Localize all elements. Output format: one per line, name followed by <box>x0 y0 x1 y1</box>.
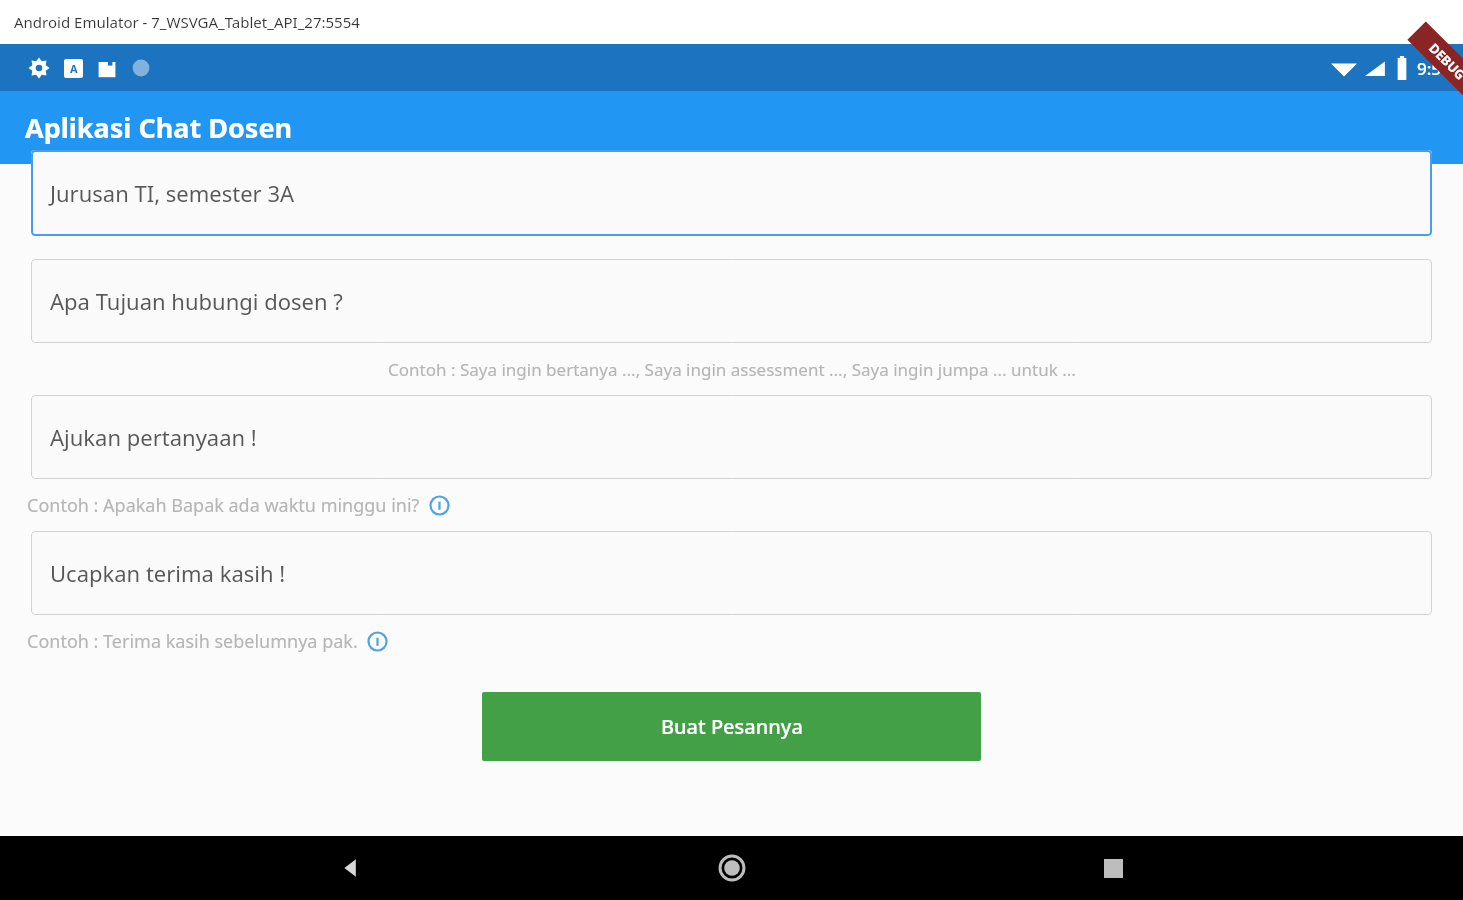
staticText: Buat Pesannya <box>661 713 803 740</box>
staticText: Ucapkan terima kasih ! <box>50 558 286 588</box>
staticText: Contoh : Apakah Bapak ada waktu minggu i… <box>27 493 420 518</box>
button[interactable]: Apa Tujuan hubungi dosen ? <box>31 259 1432 343</box>
button[interactable]: Jurusan TI, semester 3A <box>31 150 1432 236</box>
staticText: Ajukan pertanyaan ! <box>50 422 257 452</box>
button[interactable]: Recent apps <box>1082 837 1144 899</box>
staticText: Android Emulator - 7_WSVGA_Tablet_API_27… <box>14 12 360 32</box>
staticText: Jurusan TI, semester 3A <box>50 178 295 208</box>
button[interactable]: Information <box>367 631 388 652</box>
button[interactable]: Back <box>320 837 382 899</box>
staticText: Contoh : Saya ingin bertanya ..., Saya i… <box>388 358 1076 381</box>
staticText: DEBUG <box>1425 39 1463 84</box>
staticText: Contoh : Terima kasih sebelumnya pak. <box>27 629 358 654</box>
button[interactable]: Ajukan pertanyaan ! <box>31 395 1432 479</box>
staticText: Apa Tujuan hubungi dosen ? <box>50 286 343 316</box>
staticText: A <box>70 61 78 76</box>
staticText: 9:50 <box>1417 57 1451 80</box>
button[interactable]: Home <box>701 837 763 899</box>
staticText: Aplikasi Chat Dosen <box>25 109 293 146</box>
button[interactable]: Ucapkan terima kasih ! <box>31 531 1432 615</box>
button[interactable]: Information <box>429 495 450 516</box>
button[interactable]: Buat Pesannya <box>482 692 981 761</box>
